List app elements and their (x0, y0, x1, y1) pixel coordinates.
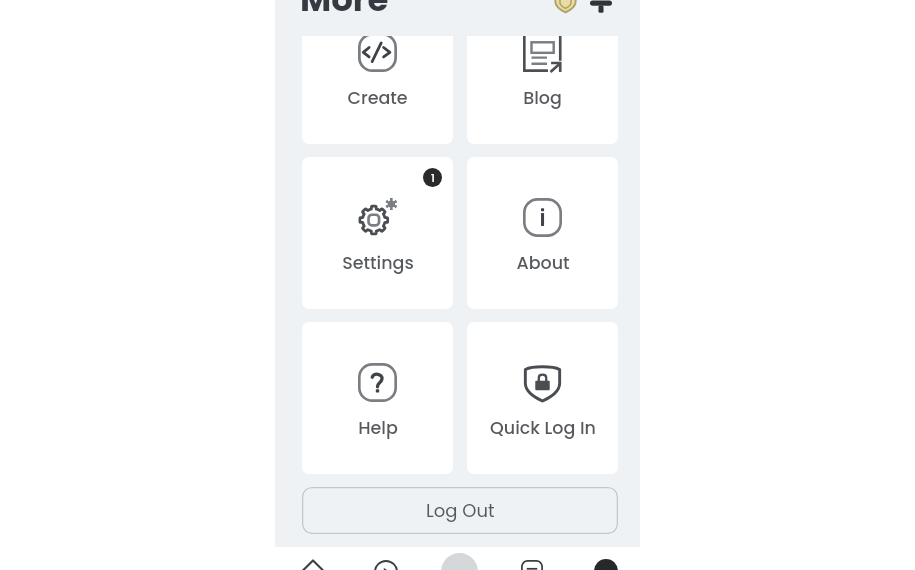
staticText: 1 (431, 170, 435, 185)
staticText: Log Out (426, 498, 495, 523)
staticText: Quick Log In (490, 416, 596, 441)
button[interactable]: Videos (348, 547, 421, 570)
button[interactable]: Create (302, 0, 453, 144)
button[interactable]: Blog (467, 0, 618, 144)
staticText: Create (347, 86, 408, 111)
staticText: Settings (342, 251, 414, 276)
button[interactable]: Add (421, 547, 494, 570)
staticText: More (300, 0, 389, 23)
button[interactable]: Settings (302, 157, 453, 309)
button[interactable]: Chat (494, 547, 567, 570)
button[interactable]: Log Out (302, 487, 618, 534)
button[interactable]: Quick Log In (467, 322, 618, 474)
staticText: About (516, 251, 570, 276)
button[interactable]: Filter (575, 0, 615, 28)
button[interactable]: Home (275, 547, 348, 570)
staticText: Blog (523, 86, 562, 111)
staticText: Help (358, 416, 398, 441)
button[interactable]: 1 notification (423, 168, 442, 187)
button[interactable]: Profile (567, 547, 640, 570)
button[interactable]: Help (302, 322, 453, 474)
button[interactable]: About (467, 157, 618, 309)
button[interactable]: Badges (541, 0, 581, 22)
